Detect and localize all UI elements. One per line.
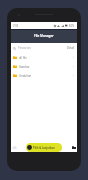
button[interactable]: Folder (71, 145, 76, 150)
other: More options (72, 65, 75, 68)
staticText: 7:05 (13, 24, 19, 28)
button[interactable]: Home (12, 145, 17, 150)
button[interactable]: Gambar (11, 62, 77, 71)
button[interactable]: Search (11, 43, 77, 53)
button[interactable]: Unduhan (11, 71, 77, 80)
other: More options (72, 56, 75, 59)
staticText: all file (19, 56, 27, 60)
staticText: Pilih & Lanjutkan (33, 146, 55, 150)
button[interactable]: Pilih & Lanjutkan (26, 143, 62, 152)
staticText: Pencarian (18, 46, 31, 50)
other: Search (13, 47, 16, 50)
staticText: Unduhan (19, 74, 32, 78)
staticText: Gambar (19, 65, 30, 69)
staticText: File Manager (34, 34, 54, 38)
staticText: Detail (67, 46, 75, 50)
other: More options (72, 74, 75, 77)
staticText: 82% (69, 24, 75, 28)
button[interactable]: all file (11, 53, 77, 62)
